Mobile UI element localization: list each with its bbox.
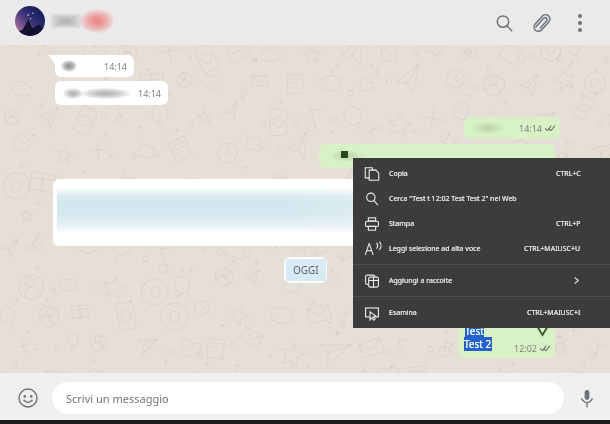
staticText: Esamina	[389, 308, 417, 318]
staticText: Stampa	[389, 219, 415, 229]
button[interactable]: Voice message	[571, 382, 603, 414]
button[interactable]: Leggi selezione ad alta voce	[353, 236, 610, 261]
button[interactable]: Search	[485, 4, 523, 42]
staticText: CTRL+MAIUSC+I	[527, 308, 581, 318]
button[interactable]: Copia	[353, 161, 610, 186]
staticText: 14:14	[104, 60, 128, 72]
staticText: Scrivi un messaggio	[66, 391, 169, 406]
button[interactable]: Attach	[523, 4, 561, 42]
button[interactable]: More options	[561, 4, 599, 42]
staticText: CTRL+MAIUSC+U	[524, 244, 581, 254]
button[interactable]: OGGI	[284, 257, 327, 283]
button[interactable]: Emoji	[11, 381, 44, 414]
button[interactable]: Esamina	[353, 300, 610, 325]
button[interactable]: Scrivi un messaggio	[52, 382, 564, 414]
staticText: CTRL+C	[556, 169, 581, 179]
staticText: Aggiungi a raccolte	[389, 276, 453, 286]
staticText: Cerca "Test t 12:02 Test Test 2" nel Web	[389, 194, 517, 204]
staticText: Test	[465, 324, 484, 337]
staticText: 14:14	[519, 122, 543, 134]
button[interactable]: Stampa	[353, 211, 610, 236]
staticText: Copia	[389, 169, 408, 179]
button[interactable]: Cerca "Test t 12:02 Test Test 2" nel Web	[353, 186, 610, 211]
button[interactable]: Aggiungi a raccolte	[353, 268, 610, 293]
staticText: Leggi selezione ad alta voce	[389, 244, 481, 254]
staticText: Test 2	[464, 337, 492, 351]
staticText: OGGI	[293, 263, 319, 277]
staticText: CTRL+P	[556, 219, 581, 229]
staticText: 14:14	[138, 87, 162, 99]
button[interactable]: Search	[0, 0, 610, 45]
staticText: 12:02	[514, 342, 538, 354]
